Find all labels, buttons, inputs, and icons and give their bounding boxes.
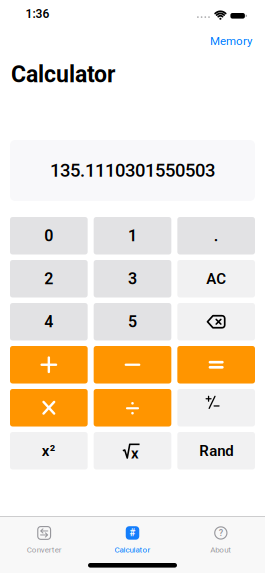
button[interactable]: 1 <box>94 217 171 254</box>
button[interactable]: Subtract <box>94 346 171 383</box>
staticText: Calculator <box>11 61 115 88</box>
button[interactable]: x² <box>10 432 88 469</box>
button[interactable]: Multiply <box>10 389 88 426</box>
button[interactable]: 4 <box>10 303 88 340</box>
staticText: 0 <box>44 227 53 245</box>
staticText: 135.1110301550503 <box>50 160 215 181</box>
staticText: 5 <box>128 313 137 331</box>
staticText: ? <box>219 528 223 538</box>
button[interactable]: Converter <box>0 526 88 554</box>
button[interactable]: AC <box>177 260 255 297</box>
staticText: Calculator <box>114 545 150 554</box>
staticText: 1 <box>128 227 137 245</box>
button[interactable]: Divide <box>94 389 171 426</box>
button[interactable]: Add <box>10 346 88 383</box>
staticText: . <box>214 227 219 245</box>
staticText: 1:36 <box>25 7 49 21</box>
staticText: x² <box>42 442 56 459</box>
staticText: AC <box>206 270 226 287</box>
staticText: 2 <box>44 270 53 288</box>
button[interactable]: Square Root <box>94 432 171 469</box>
button[interactable]: 2 <box>10 260 88 297</box>
button[interactable]: ? <box>177 526 265 554</box>
staticText: # <box>129 527 135 539</box>
button[interactable]: Memory <box>210 34 252 48</box>
staticText: 4 <box>44 313 53 331</box>
button[interactable]: Delete <box>177 303 255 340</box>
staticText: Memory <box>210 34 252 48</box>
button[interactable]: Plus/Minus <box>177 389 255 426</box>
button[interactable]: Equals <box>177 346 255 383</box>
staticText: Converter <box>27 545 62 554</box>
staticText: x <box>131 445 139 462</box>
button[interactable]: 5 <box>94 303 171 340</box>
staticText: About <box>210 545 231 554</box>
button[interactable]: 0 <box>10 217 88 254</box>
button[interactable]: . <box>177 217 255 254</box>
staticText: 3 <box>128 270 137 288</box>
staticText: Rand <box>199 442 233 459</box>
button[interactable]: 3 <box>94 260 171 297</box>
button[interactable]: Rand <box>177 432 255 469</box>
button[interactable]: # <box>88 526 177 554</box>
